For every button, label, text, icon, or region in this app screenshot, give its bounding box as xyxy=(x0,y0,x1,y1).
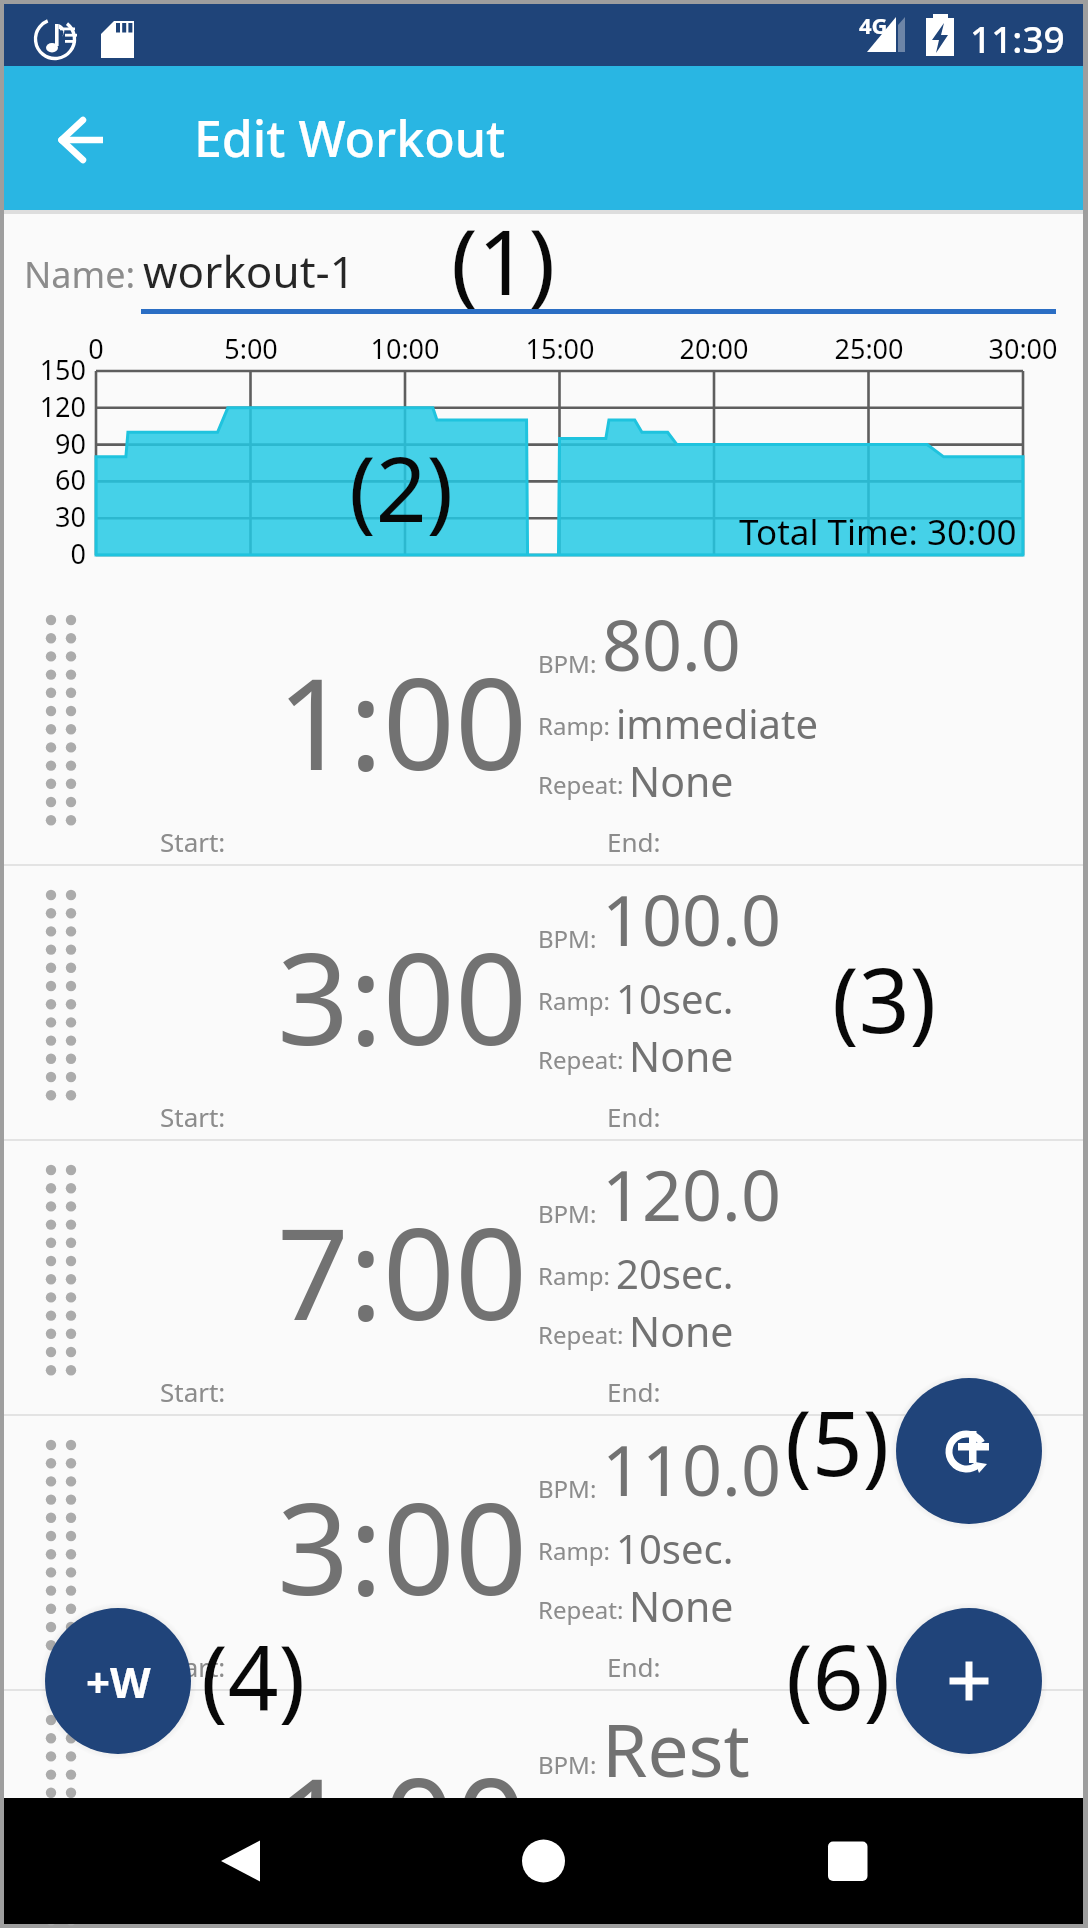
staticText: Ramp: xyxy=(538,1534,611,1567)
staticText: 20sec. xyxy=(616,1246,734,1300)
staticText: Repeat: xyxy=(538,768,624,801)
staticText: 110.0 xyxy=(602,1421,781,1516)
button[interactable]: Add interval xyxy=(896,1608,1042,1754)
button[interactable]: 1:00 xyxy=(4,591,1083,866)
staticText: 0 xyxy=(26,330,166,367)
staticText: (4) xyxy=(201,1616,306,1737)
staticText: 10:00 xyxy=(335,330,475,367)
staticText: 15:00 xyxy=(490,330,630,367)
staticText: Repeat: xyxy=(538,1318,624,1351)
staticText: 150 xyxy=(22,351,86,388)
staticText: 0 xyxy=(22,535,86,572)
staticText: 1:00 xyxy=(277,1735,527,1907)
staticText: Rest xyxy=(602,1699,750,1798)
staticText: 5:00 xyxy=(181,330,321,367)
staticText: +W xyxy=(86,1653,151,1710)
staticText: End: xyxy=(607,824,661,859)
staticText: BPM: xyxy=(538,922,597,955)
staticText: End: xyxy=(607,1649,661,1684)
staticText: 25:00 xyxy=(799,330,939,367)
staticText: (1) xyxy=(451,200,556,321)
staticText: Ramp: xyxy=(538,709,611,742)
staticText: immediate xyxy=(616,696,819,750)
staticText: None xyxy=(629,1028,734,1084)
button[interactable]: 1:00 xyxy=(4,1691,1083,1928)
staticText: Start: xyxy=(160,1649,226,1684)
staticText: (2) xyxy=(349,427,454,548)
staticText: Total Time: 30:00 xyxy=(739,508,1017,556)
staticText: (6) xyxy=(786,1615,891,1736)
staticText: 60 xyxy=(22,461,86,498)
staticText: (5) xyxy=(785,1381,890,1502)
staticText: 120 xyxy=(22,388,86,425)
button[interactable]: Add workout xyxy=(45,1608,191,1754)
button[interactable]: 3:00 xyxy=(4,866,1083,1141)
staticText: 7:00 xyxy=(277,1185,527,1357)
button[interactable]: 7:00 xyxy=(4,1141,1083,1416)
button[interactable]: Add repeat xyxy=(896,1378,1042,1524)
button[interactable]: 3:00 xyxy=(4,1416,1083,1691)
staticText: 100.0 xyxy=(602,871,781,966)
staticText: End: xyxy=(607,1099,661,1134)
staticText: 4G xyxy=(859,10,888,40)
staticText: 3:00 xyxy=(277,1460,527,1632)
staticText: 1:00 xyxy=(277,635,527,807)
staticText: BPM: xyxy=(538,1472,597,1505)
staticText: Start: xyxy=(160,1099,226,1134)
staticText: 90 xyxy=(22,425,86,462)
staticText: None xyxy=(629,1578,734,1634)
staticText: Start: xyxy=(160,1374,226,1409)
staticText: Name: xyxy=(24,250,136,299)
staticText: 10sec. xyxy=(616,1521,734,1575)
staticText: BPM: xyxy=(538,1197,597,1230)
staticText: None xyxy=(629,1303,734,1359)
staticText: Start: xyxy=(160,824,226,859)
staticText: 20:00 xyxy=(644,330,784,367)
staticText: BPM: xyxy=(538,647,597,680)
staticText: End: xyxy=(607,1374,661,1409)
staticText: 30:00 xyxy=(953,330,1088,367)
staticText: 11:39 xyxy=(970,13,1065,63)
staticText: Edit Workout xyxy=(194,104,506,172)
staticText: Ramp: xyxy=(538,1259,611,1292)
staticText: 30 xyxy=(22,498,86,535)
staticText: workout-1 xyxy=(143,241,355,301)
staticText: BPM: xyxy=(538,1748,597,1781)
staticText: Repeat: xyxy=(538,1043,624,1076)
staticText: Ramp: xyxy=(538,984,611,1017)
staticText: Repeat: xyxy=(538,1593,624,1626)
staticText: 120.0 xyxy=(602,1146,781,1241)
staticText: 10sec. xyxy=(616,971,734,1025)
button[interactable]: Back xyxy=(46,99,124,177)
staticText: None xyxy=(629,753,734,809)
staticText: 3:00 xyxy=(277,910,527,1082)
staticText: 80.0 xyxy=(602,596,741,691)
staticText: (3) xyxy=(832,938,937,1059)
